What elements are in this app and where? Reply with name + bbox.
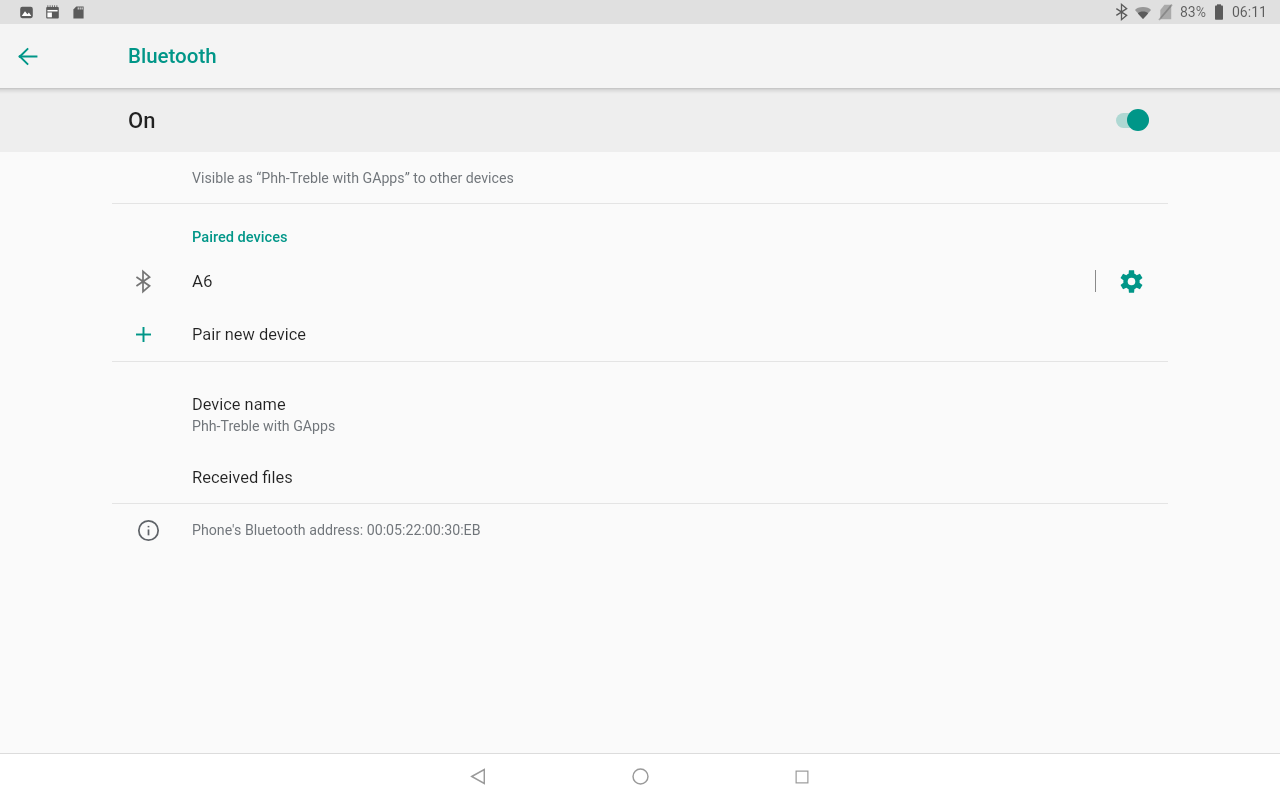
button[interactable]: Recents [721,753,883,800]
staticText: A6 [192,271,213,291]
staticText: On [128,108,156,134]
button[interactable]: Home [559,753,721,800]
staticText: Paired devices [192,228,288,245]
button[interactable]: On [0,88,1280,152]
staticText: Visible as “Phh-Treble with GApps” to ot… [192,170,514,187]
button[interactable]: Bluetooth on/off [1103,96,1161,144]
button[interactable]: Received files [0,454,1280,500]
staticText: 83% [1180,4,1206,20]
staticText: Phone's Bluetooth address: 00:05:22:00:3… [192,522,481,539]
button[interactable]: Device settings [1095,254,1168,308]
staticText: Device name [192,395,286,414]
button[interactable]: Pair new device [0,307,1280,361]
button[interactable]: Device name [0,365,1280,439]
staticText: Received files [192,468,293,487]
button[interactable]: Navigate up [4,32,52,80]
staticText: Pair new device [192,325,306,344]
staticText: Phh-Treble with GApps [192,418,336,435]
staticText: 06:11 [1232,4,1267,20]
staticText: Bluetooth [128,44,217,68]
button[interactable]: Back [397,753,559,800]
button[interactable]: A6 [0,254,1280,308]
